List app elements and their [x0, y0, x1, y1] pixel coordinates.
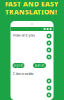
button[interactable]: Action	[46, 40, 52, 46]
button[interactable]: English	[12, 63, 24, 68]
button[interactable]: Action	[46, 33, 52, 39]
button[interactable]: Action	[46, 54, 52, 60]
staticText: How are you	[12, 32, 34, 38]
button[interactable]: Spanish	[33, 63, 46, 68]
button[interactable]: Action	[46, 92, 52, 98]
staticText: Spanish	[34, 64, 44, 67]
button[interactable]: Action	[46, 85, 52, 91]
button[interactable]: Action	[46, 78, 52, 84]
staticText: English	[13, 64, 23, 67]
staticText: TRANSLATION!	[5, 8, 57, 16]
staticText: Cómo estás	[12, 71, 33, 76]
button[interactable]: Action	[46, 47, 52, 53]
staticText: FAST AND EASY	[5, 0, 58, 8]
